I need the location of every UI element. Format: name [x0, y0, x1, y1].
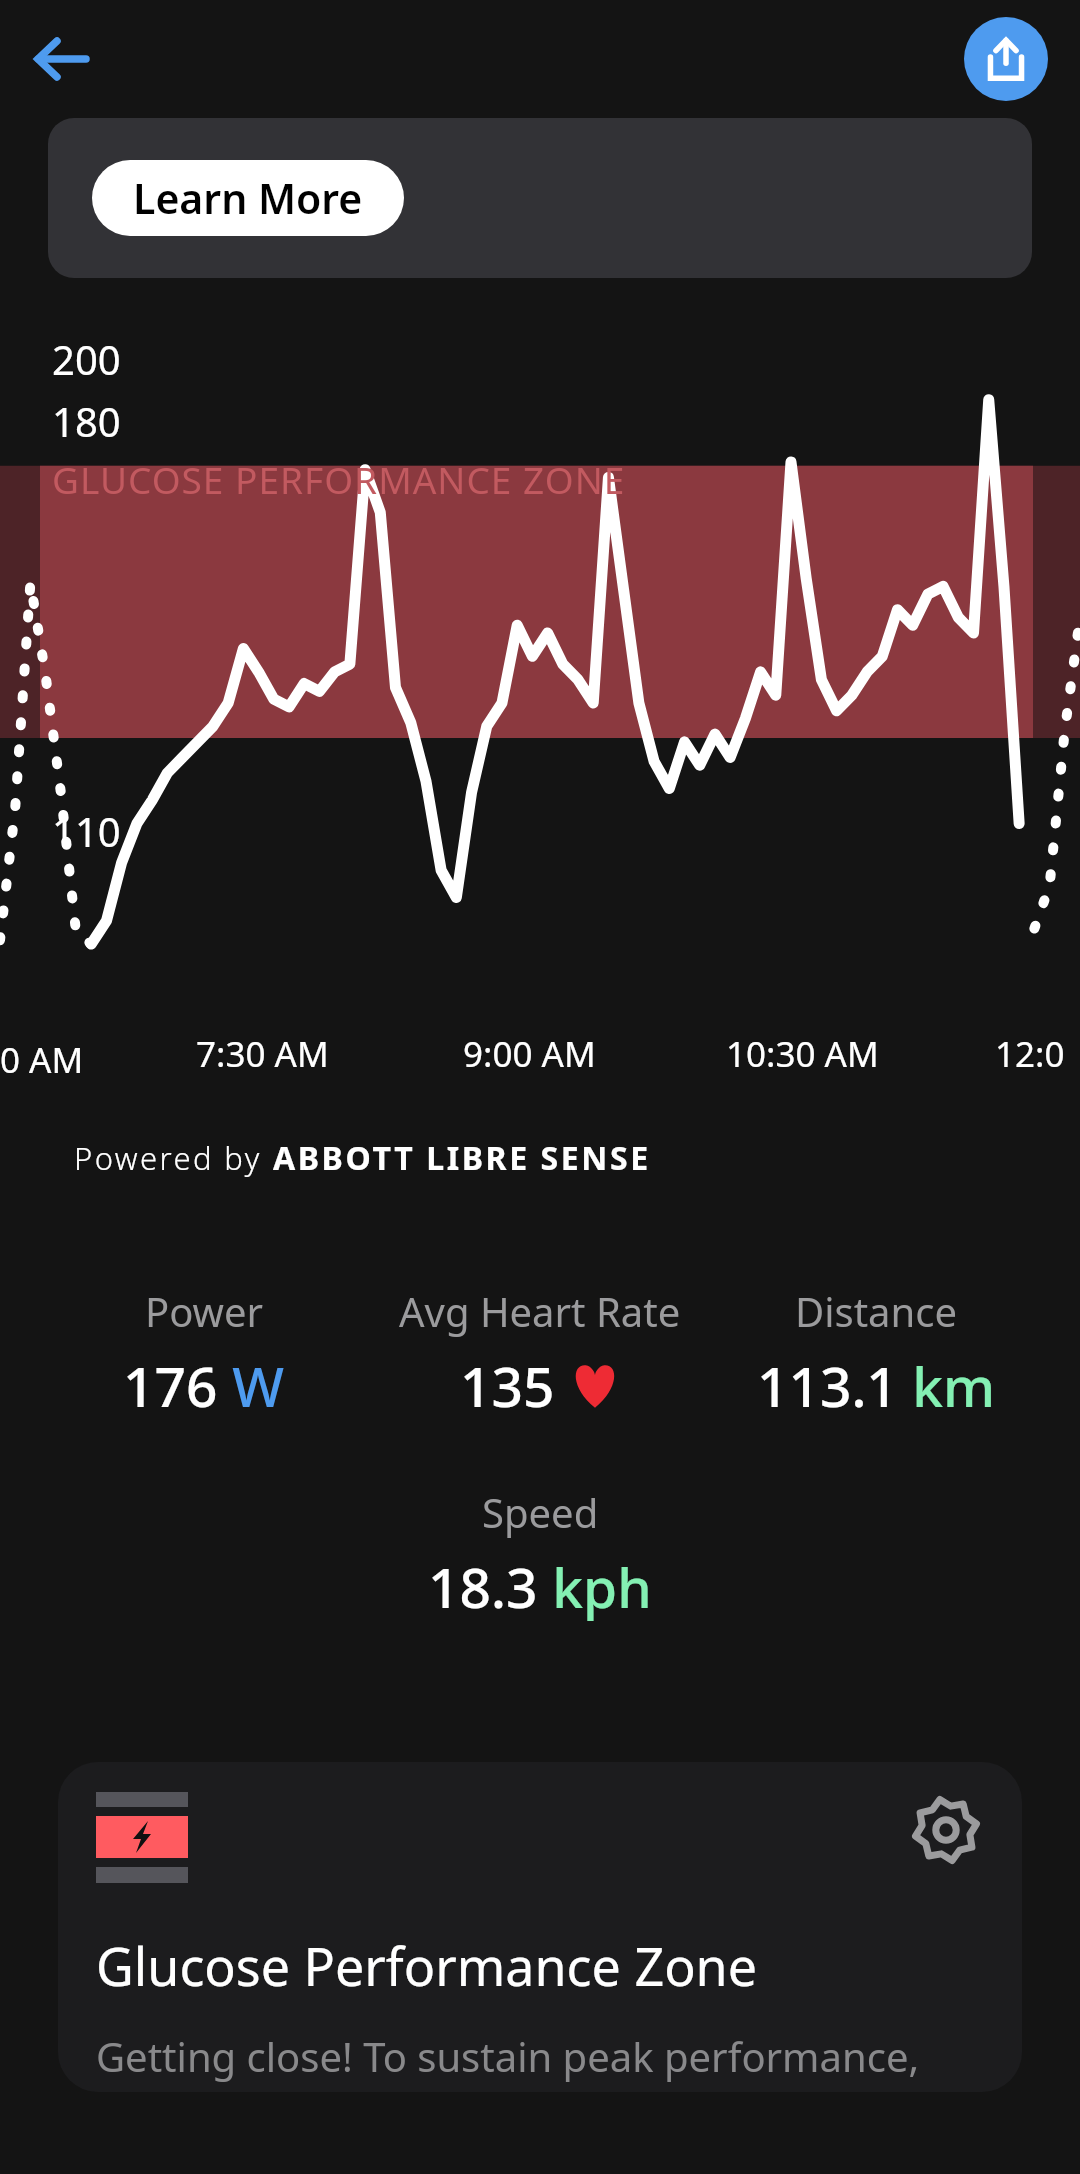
staticText: 200	[52, 332, 121, 386]
staticText: 9:00 AM	[463, 1030, 596, 1078]
staticText: 176	[123, 1348, 218, 1423]
staticText: 18.3	[428, 1549, 538, 1624]
staticText: Powered by	[74, 1137, 273, 1179]
staticText: Getting close! To sustain peak performan…	[96, 2029, 982, 2092]
staticText: W	[218, 1348, 285, 1423]
button[interactable]: Avg Heart Rate	[372, 1284, 708, 1423]
button[interactable]: Speed	[372, 1485, 708, 1624]
staticText: 113.1	[757, 1348, 898, 1423]
staticText: Glucose Performance Zone	[96, 1930, 758, 2001]
staticText: Power	[145, 1284, 264, 1338]
button[interactable]: Power	[36, 1284, 372, 1423]
staticText: Learn More	[133, 170, 363, 226]
staticText: 10:30 AM	[726, 1030, 879, 1078]
staticText: 180	[52, 394, 121, 448]
staticText: Avg Heart Rate	[399, 1284, 681, 1338]
staticText: 135	[460, 1348, 555, 1423]
staticText: kph	[538, 1549, 652, 1624]
button[interactable]: Settings	[58, 1762, 1022, 2092]
staticText: 0 AM	[0, 1036, 84, 1084]
staticText: 12:00 PM	[995, 1030, 1080, 1090]
button[interactable]: Share	[964, 17, 1048, 101]
staticText: Speed	[482, 1485, 599, 1539]
staticText: GLUCOSE PERFORMANCE ZONE	[52, 454, 626, 504]
button[interactable]: Settings	[914, 1798, 978, 1862]
button[interactable]: Distance	[708, 1284, 1044, 1423]
staticText: km	[898, 1348, 996, 1423]
staticText: ABBOTT LIBRE SENSE	[273, 1136, 651, 1180]
button[interactable]: Learn More	[92, 160, 404, 236]
staticText: 110	[52, 804, 121, 858]
staticText: Distance	[795, 1284, 958, 1338]
staticText: 7:30 AM	[196, 1030, 329, 1078]
button[interactable]: Back	[20, 18, 102, 100]
